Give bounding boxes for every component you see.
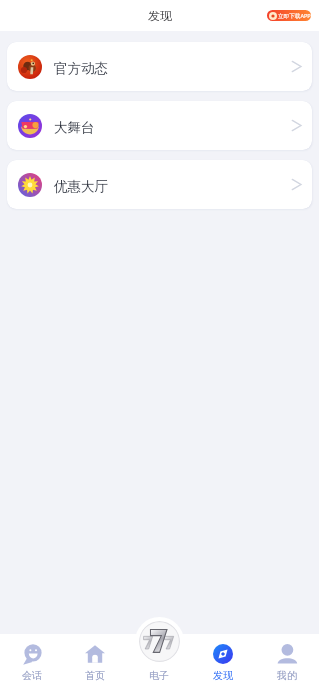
button[interactable]: 我的 — [255, 634, 319, 695]
staticText: 立即下载APP — [278, 12, 311, 20]
staticText: 发现 — [213, 669, 233, 682]
staticText: 会话 — [22, 669, 42, 682]
staticText: 发现 — [148, 8, 172, 23]
button[interactable]: 会话 — [0, 634, 63, 695]
staticText: 电子 — [149, 669, 169, 682]
staticText: 我的 — [277, 669, 297, 682]
button[interactable]: 电子 — [127, 634, 191, 695]
button[interactable]: 大舞台 — [7, 101, 312, 150]
button[interactable]: 优惠大厅 — [7, 160, 312, 209]
button[interactable]: 立即下载APP — [267, 10, 311, 21]
button[interactable]: 电子 — [135, 617, 184, 666]
staticText: 官方动态 — [54, 60, 108, 77]
staticText: 大舞台 — [54, 119, 95, 136]
button[interactable]: 首页 — [63, 634, 127, 695]
staticText: 首页 — [85, 669, 105, 682]
button[interactable]: 发现 — [191, 634, 255, 695]
staticText: 优惠大厅 — [54, 178, 108, 195]
button[interactable]: 官方动态 — [7, 42, 312, 91]
